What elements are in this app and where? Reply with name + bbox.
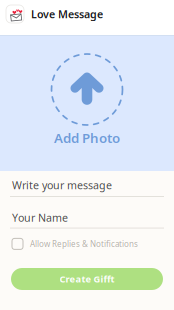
staticText: Allow Replies & Notifications [30,239,138,249]
staticText: Add Photo [54,129,120,147]
staticText: Love Message [31,7,103,21]
button[interactable]: Allow Replies & Notifications [0,228,174,252]
button[interactable]: Add Photo [0,36,174,171]
staticText: Your Name [12,211,68,225]
button[interactable]: Create Gifft [11,268,163,290]
staticText: Create Gifft [59,273,114,285]
staticText: Write your message [12,178,112,192]
